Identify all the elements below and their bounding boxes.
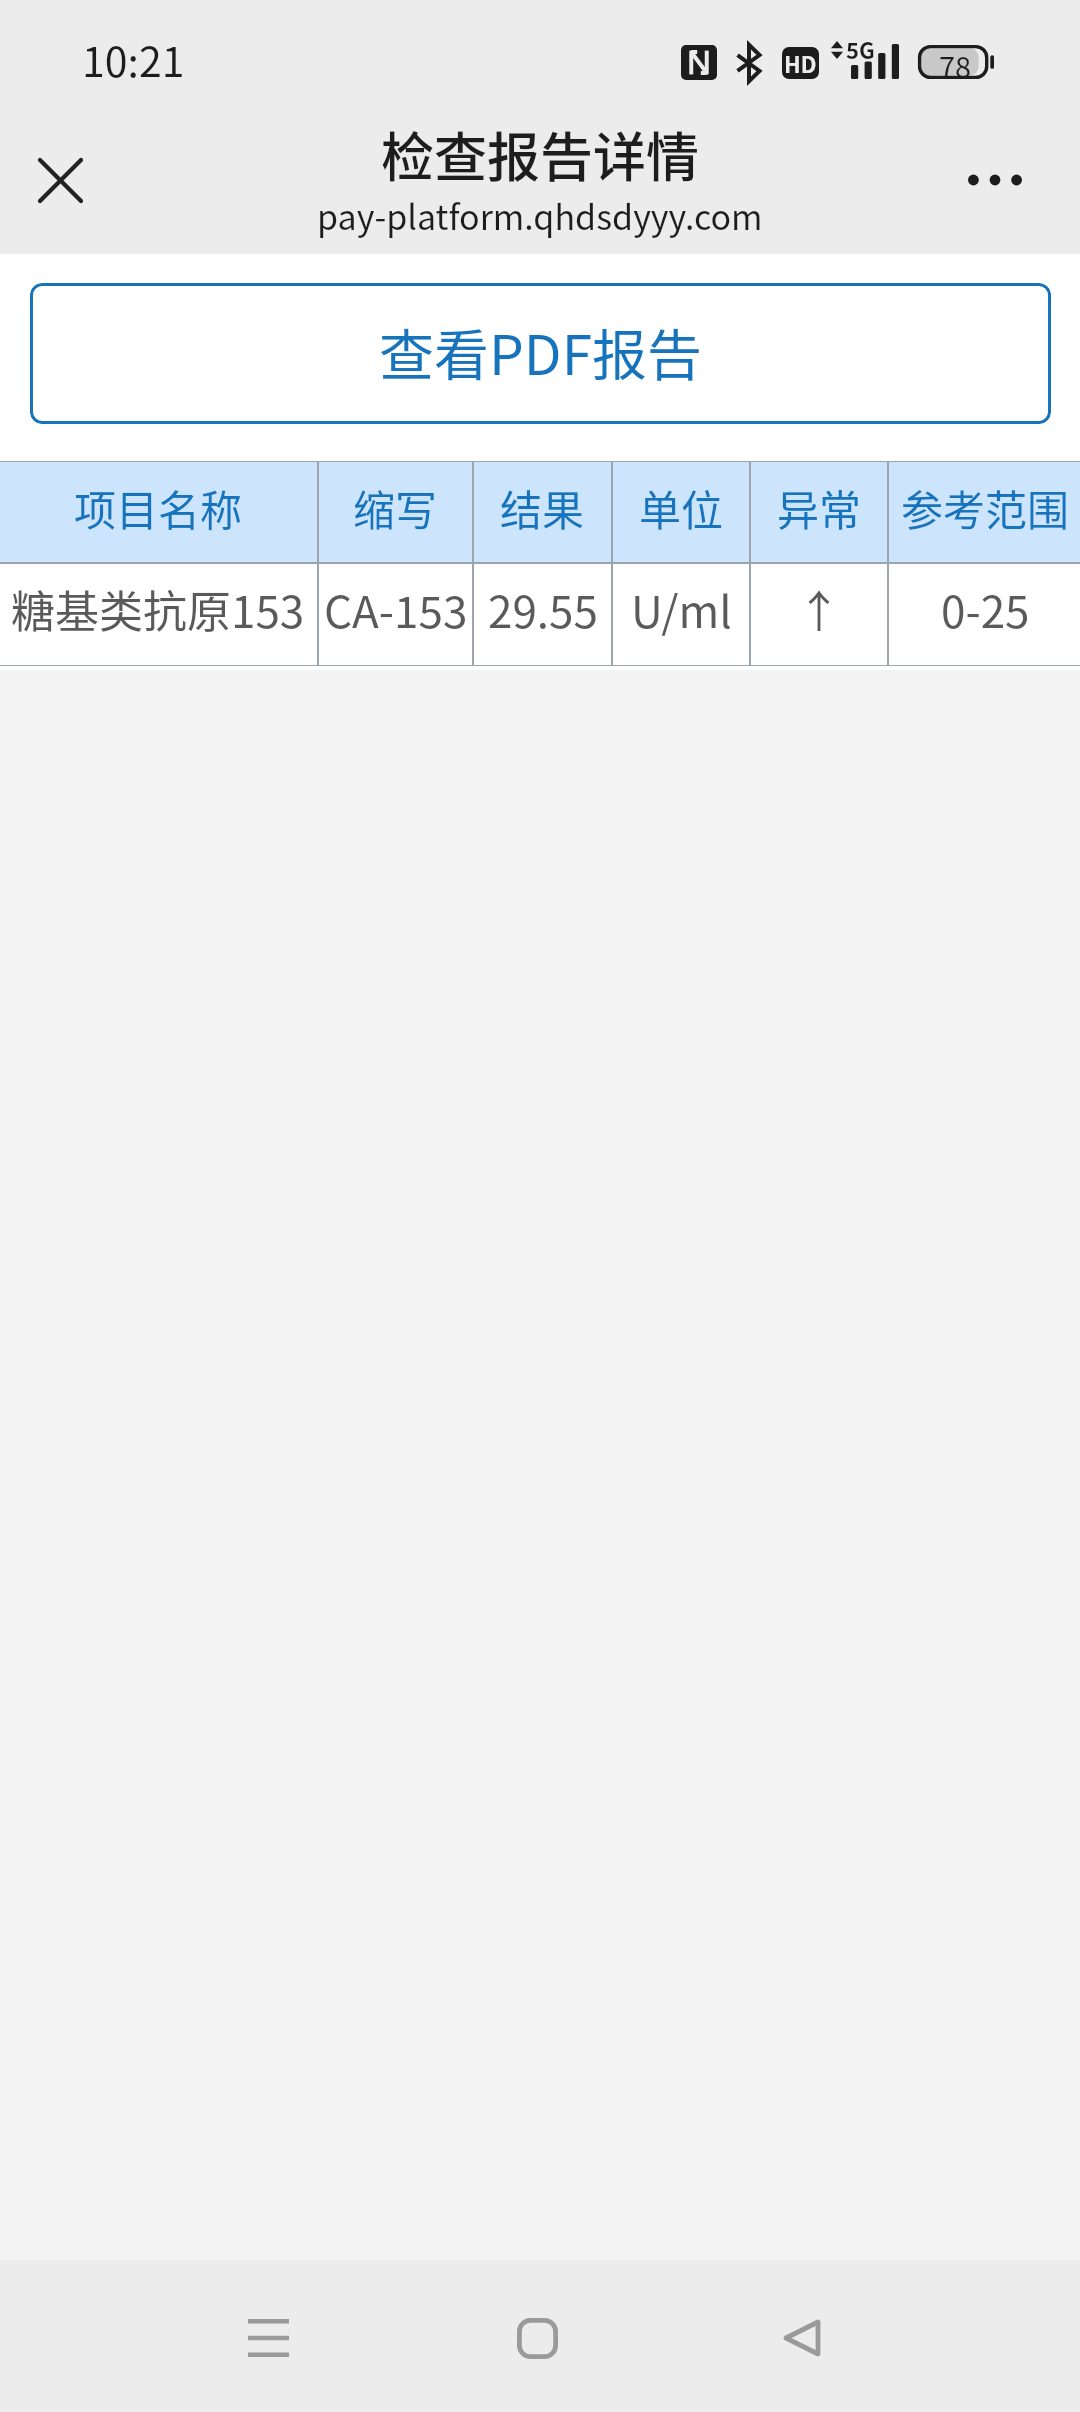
staticText: 异常 (777, 477, 862, 538)
staticText: 单位 (639, 477, 724, 538)
staticText: 29.55 (488, 577, 598, 641)
staticText: ↑ (797, 577, 841, 641)
button[interactable]: 查看PDF报告 (30, 283, 1051, 424)
staticText: 0-25 (941, 577, 1030, 641)
button[interactable]: Close (12, 132, 108, 228)
staticText: U/ml (631, 577, 732, 641)
staticText: pay-platform.qhdsdyyy.com (317, 191, 763, 240)
button[interactable]: 糖基类抗原153 (0, 563, 1080, 666)
staticText: CA-153 (324, 577, 468, 641)
staticText: 10:21 (82, 29, 185, 88)
button[interactable]: Home (472, 2273, 602, 2403)
button[interactable]: More options (947, 132, 1043, 228)
staticText: 78 (939, 44, 972, 78)
button[interactable]: Recent apps (203, 2273, 333, 2403)
staticText: 缩写 (353, 477, 438, 538)
staticText: 5G (846, 33, 875, 65)
staticText: 项目名称 (74, 477, 243, 538)
staticText: HD (784, 47, 817, 79)
staticText: 糖基类抗原153 (11, 577, 305, 641)
staticText: 查看PDF报告 (379, 311, 703, 391)
staticText: 检查报告详情 (381, 116, 699, 193)
staticText: 结果 (500, 477, 585, 538)
button[interactable]: Back (737, 2273, 867, 2403)
staticText: 参考范围 (901, 477, 1070, 538)
